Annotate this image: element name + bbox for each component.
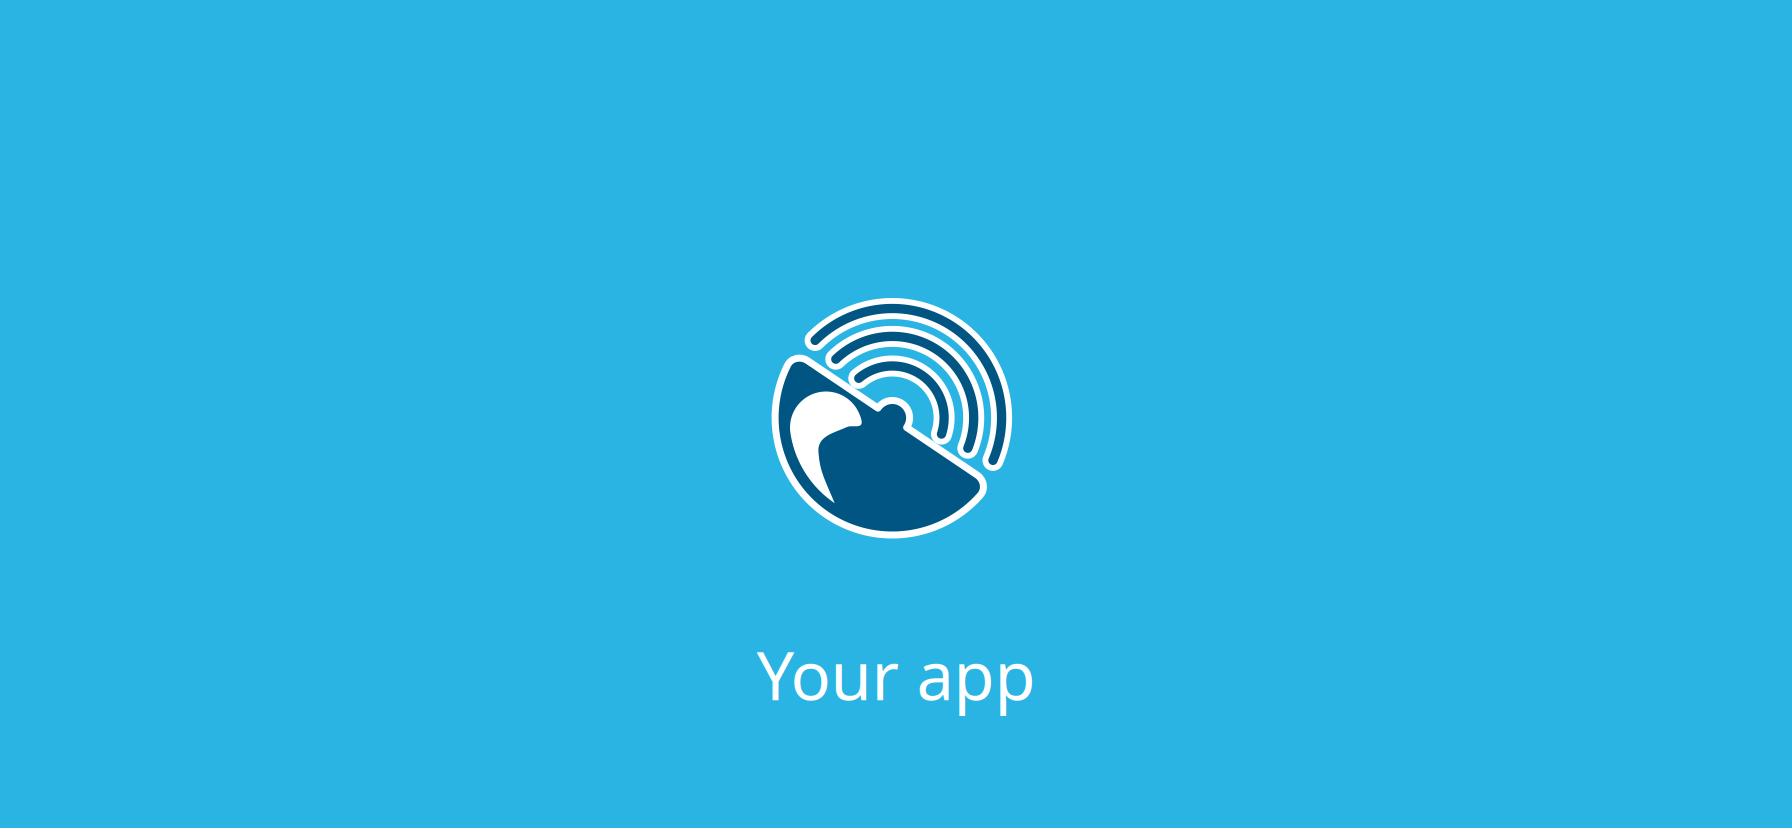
staticText: Your app <box>756 630 1035 718</box>
